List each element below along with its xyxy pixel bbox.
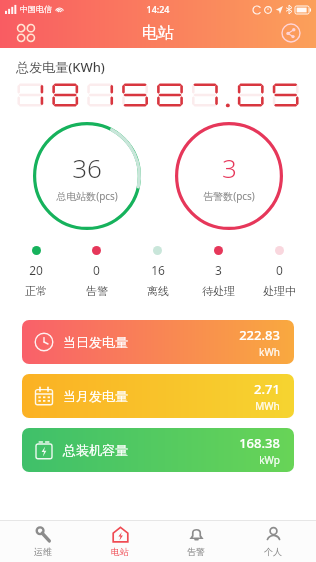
staticText: 电站 <box>142 23 174 43</box>
staticText: 总发电量(KWh) <box>16 58 105 76</box>
staticText: 中国电信 <box>20 4 52 14</box>
staticText: 0 <box>276 262 283 278</box>
button[interactable]: 运维 <box>9 520 77 562</box>
staticText: MWh <box>255 399 280 413</box>
staticText: 222.83 <box>239 326 280 344</box>
staticText: 运维 <box>34 546 52 557</box>
staticText: 正常 <box>25 284 47 298</box>
staticText: 总电站数(pcs) <box>56 189 118 203</box>
button[interactable]: 告警 <box>162 520 230 562</box>
staticText: kWh <box>259 345 280 359</box>
staticText: 离线 <box>147 284 169 298</box>
staticText: 3 <box>215 262 222 278</box>
staticText: 0 <box>93 262 100 278</box>
button[interactable]: 电站 <box>86 520 154 562</box>
button[interactable]: 总装机容量 <box>22 428 294 472</box>
button[interactable]: 36 <box>31 120 143 232</box>
button[interactable]: 3 <box>173 120 285 232</box>
staticText: 168.38 <box>239 434 280 452</box>
staticText: 2.71 <box>254 380 280 398</box>
button[interactable]: Share <box>276 18 306 48</box>
button[interactable]: 0 <box>249 244 310 298</box>
staticText: 16 <box>151 262 165 278</box>
button[interactable]: 20 <box>6 244 66 298</box>
button[interactable]: 3 <box>188 244 249 298</box>
staticText: 个人 <box>264 546 282 557</box>
button[interactable]: 当月发电量 <box>22 374 294 418</box>
staticText: 电站 <box>111 546 129 557</box>
staticText: 当月发电量 <box>63 388 128 404</box>
button[interactable]: 0 <box>66 244 127 298</box>
staticText: kWp <box>259 453 280 467</box>
staticText: 当日发电量 <box>63 334 128 350</box>
button[interactable]: 16 <box>127 244 188 298</box>
staticText: 总装机容量 <box>63 442 128 458</box>
staticText: 告警 <box>187 546 205 557</box>
button[interactable]: 个人 <box>239 520 307 562</box>
button[interactable]: Grid menu <box>10 18 42 48</box>
button[interactable]: 当日发电量 <box>22 320 294 364</box>
staticText: 待处理 <box>202 284 235 298</box>
staticText: 告警数(pcs) <box>203 189 255 203</box>
staticText: 14:24 <box>146 3 170 15</box>
staticText: 处理中 <box>263 284 296 298</box>
staticText: 20 <box>29 262 43 278</box>
staticText: 3 <box>222 150 237 185</box>
staticText: 告警 <box>86 284 108 298</box>
staticText: 36 <box>72 150 102 185</box>
